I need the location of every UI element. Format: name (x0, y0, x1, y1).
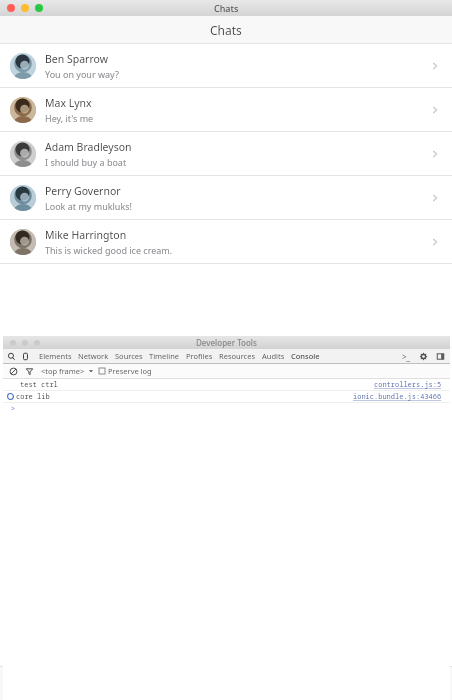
staticText: Max Lynx (45, 96, 92, 110)
staticText: Ben Sparrow (45, 52, 108, 66)
button[interactable]: Profiles (183, 351, 216, 361)
button[interactable]: Perry Governor (0, 176, 452, 219)
staticText: Resources (219, 351, 256, 361)
staticText: Chats (214, 2, 239, 14)
button[interactable]: Audits (259, 351, 288, 361)
button[interactable]: controllers.js:5 (374, 380, 442, 390)
button[interactable]: Settings (419, 352, 428, 361)
staticText: Timeline (149, 351, 180, 361)
staticText: Sources (115, 351, 143, 361)
staticText: Network (78, 351, 109, 361)
staticText: >_ (402, 351, 411, 362)
button[interactable]: Filter (25, 367, 34, 376)
button[interactable]: Max Lynx (0, 88, 452, 131)
button[interactable]: Clear console (9, 367, 18, 376)
button[interactable]: Adam Bradleyson (0, 132, 452, 175)
staticText: You on your way? (45, 68, 119, 80)
staticText: Developer Tools (196, 337, 257, 348)
button[interactable]: ionic.bundle.js:43466 (353, 392, 442, 402)
button[interactable]: Dock side (436, 352, 445, 361)
staticText: Elements (39, 351, 72, 361)
button[interactable]: Mike Harrington (0, 220, 452, 263)
staticText: Audits (262, 351, 285, 361)
staticText: Preserve log (108, 366, 152, 376)
button[interactable]: Sources (112, 351, 146, 361)
staticText: Console (291, 351, 320, 361)
staticText: Chats (210, 22, 242, 38)
staticText: This is wicked good ice cream. (45, 244, 173, 256)
staticText: test ctrl (20, 380, 58, 390)
button[interactable]: Ben Sparrow (0, 44, 452, 87)
staticText: Profiles (186, 351, 213, 361)
staticText: Adam Bradleyson (45, 140, 132, 154)
button[interactable]: Timeline (146, 351, 183, 361)
staticText: Look at my mukluks! (45, 200, 132, 212)
button[interactable]: Console (288, 351, 323, 361)
staticText: Mike Harrington (45, 228, 127, 242)
staticText: Hey, it's me (45, 112, 94, 124)
button[interactable]: <top frame> (41, 366, 85, 376)
button[interactable]: Network (75, 351, 112, 361)
button[interactable]: Preserve log (99, 366, 152, 376)
staticText: <top frame> (41, 366, 85, 376)
button[interactable]: Resources (216, 351, 259, 361)
button[interactable]: Device mode (21, 352, 30, 361)
button[interactable]: Search (7, 352, 16, 361)
staticText: I should buy a boat (45, 156, 127, 168)
staticText: core lib (16, 392, 50, 402)
button[interactable]: Elements (36, 351, 75, 361)
staticText: Perry Governor (45, 184, 121, 198)
staticText: > (11, 404, 16, 414)
